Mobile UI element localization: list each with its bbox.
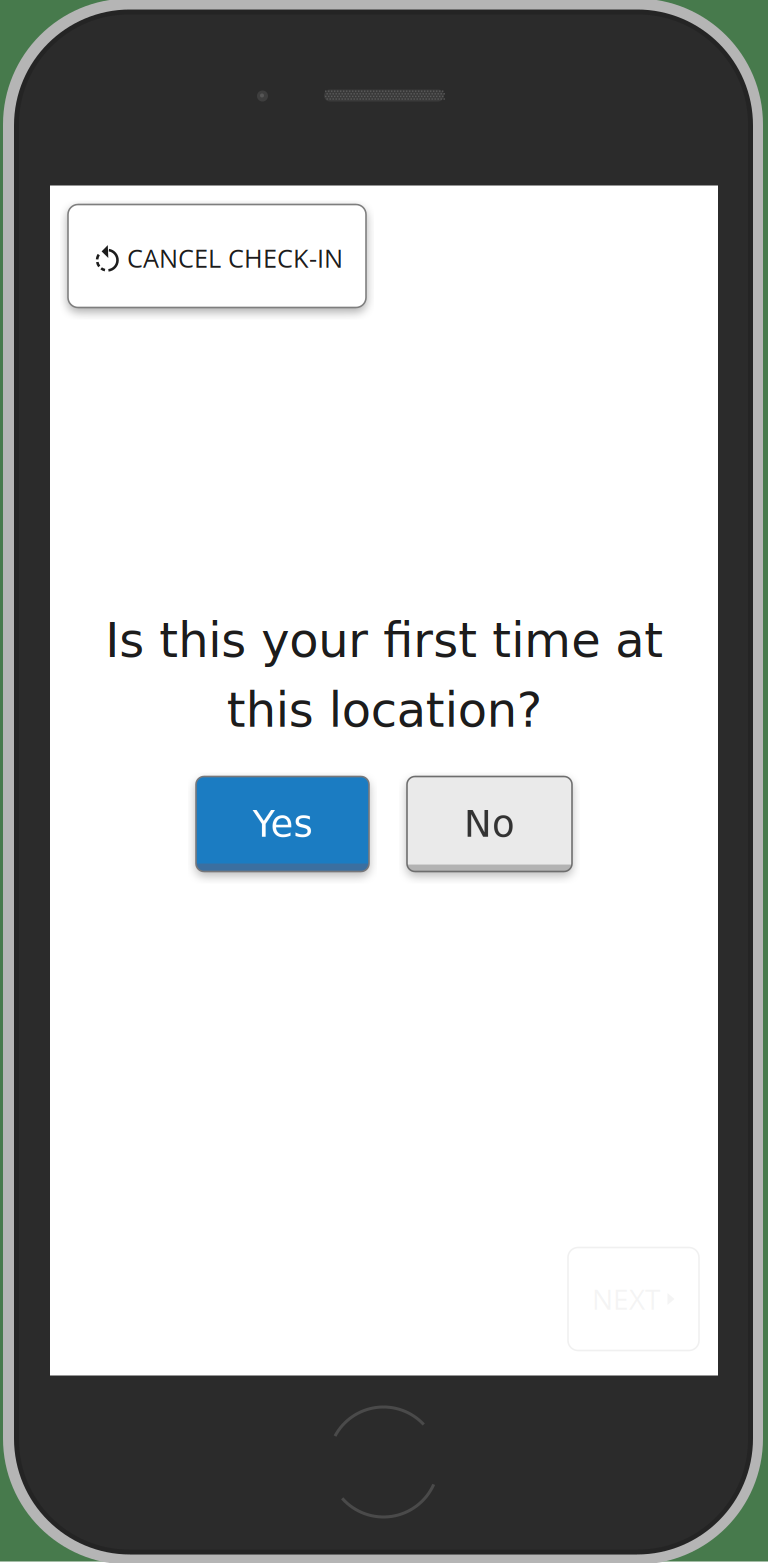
staticText: CANCEL CHECK-IN	[127, 241, 343, 275]
button[interactable]: Yes	[196, 776, 369, 871]
staticText: NEXT	[592, 1280, 660, 1318]
button[interactable]: No	[407, 776, 572, 871]
staticText: Is this your first time at this location…	[105, 612, 663, 738]
staticText: No	[464, 802, 515, 846]
button[interactable]: CANCEL CHECK-IN	[68, 204, 366, 307]
staticText: Yes	[252, 802, 312, 846]
